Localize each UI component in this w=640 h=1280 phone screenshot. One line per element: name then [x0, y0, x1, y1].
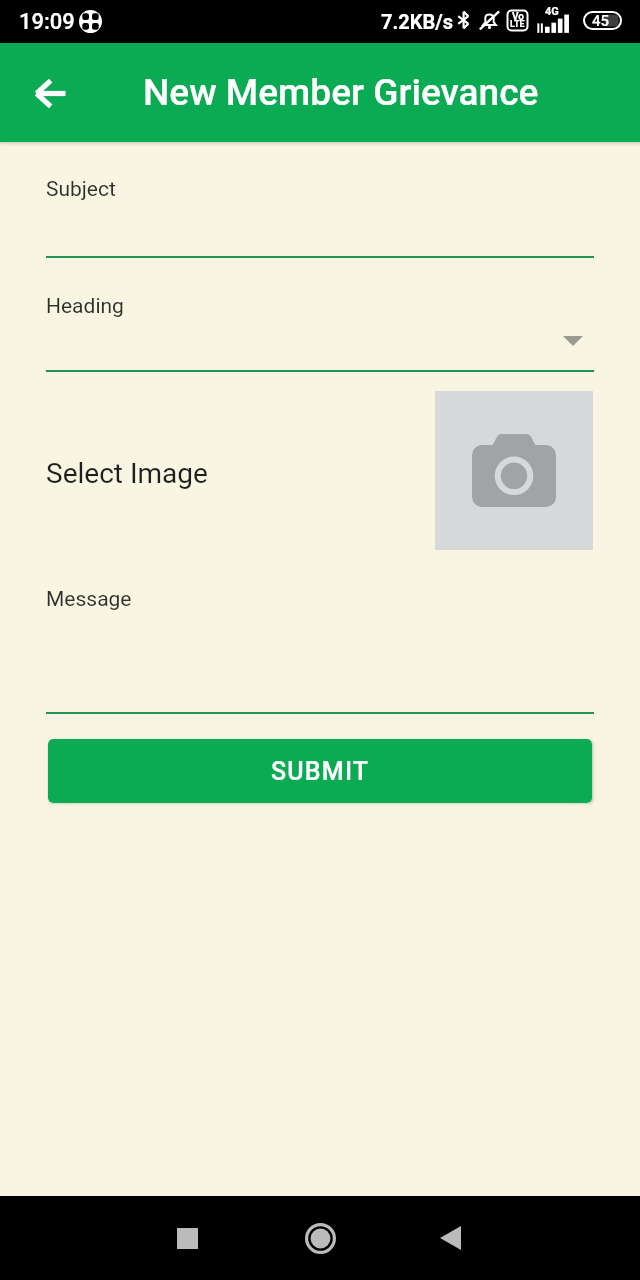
button[interactable]: Home [284, 1196, 356, 1280]
button[interactable]: Recents [151, 1196, 223, 1280]
staticText: Heading [46, 294, 124, 319]
button[interactable]: Select image [435, 391, 593, 550]
staticText: 19:09 [19, 9, 75, 35]
staticText: 7.2KB/s [381, 10, 454, 33]
button[interactable]: Back [414, 1196, 486, 1280]
button[interactable]: Message [46, 582, 594, 714]
staticText: SUBMIT [271, 757, 370, 786]
staticText: New Member Grievance [143, 71, 539, 114]
staticText: Message [46, 587, 132, 612]
button[interactable]: Heading [46, 289, 594, 372]
button[interactable]: SUBMIT [48, 739, 592, 803]
staticText: Subject [46, 177, 116, 202]
staticText: Select Image [46, 457, 208, 490]
staticText: Vo [512, 11, 524, 23]
button[interactable]: Subject [46, 172, 594, 258]
staticText: 45 [592, 12, 610, 30]
staticText: 4G [545, 5, 559, 18]
button[interactable]: Back [18, 61, 82, 125]
staticText: LTE [510, 19, 525, 30]
button[interactable]: Select Image [46, 440, 366, 496]
